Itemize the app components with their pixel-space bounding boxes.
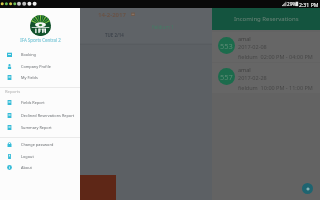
staticText: Logout bbox=[21, 154, 34, 159]
button[interactable]: Fields Report bbox=[0, 96, 80, 108]
staticText: Booking bbox=[21, 52, 36, 57]
button[interactable]: Summary Report bbox=[0, 121, 80, 133]
button[interactable]: Company Profile bbox=[0, 60, 80, 72]
staticText: 2017-02-28 bbox=[238, 74, 267, 81]
staticText: 29% bbox=[287, 1, 297, 7]
staticText: 557 bbox=[220, 72, 233, 82]
staticText: About bbox=[21, 165, 32, 170]
staticText: IFA Sports Central 2 bbox=[20, 37, 61, 43]
staticText: amal bbox=[238, 66, 251, 73]
staticText: 2017-02-08 bbox=[238, 43, 267, 50]
staticText: Declined Reservations Report bbox=[21, 113, 75, 118]
staticText: amal bbox=[238, 35, 251, 42]
button[interactable]: My Fields bbox=[0, 71, 80, 83]
staticText: 2:31 PM bbox=[299, 1, 319, 8]
staticText: Reports bbox=[5, 89, 21, 95]
button[interactable]: Logout bbox=[0, 150, 80, 162]
staticText: Company Profile bbox=[21, 64, 51, 69]
staticText: Summary Report bbox=[21, 125, 52, 130]
button[interactable]: Declined Reservations Report bbox=[0, 109, 80, 121]
staticText: My Fields bbox=[21, 75, 38, 80]
staticText: 14-2-2017 bbox=[98, 11, 126, 19]
button[interactable]: Booking bbox=[0, 48, 80, 60]
button[interactable]: 553 bbox=[212, 32, 320, 62]
staticText: TUE 2/14 bbox=[105, 32, 124, 38]
button[interactable]: About bbox=[0, 161, 80, 173]
button[interactable]: Change password bbox=[0, 138, 80, 150]
staticText: Incoming Reservations bbox=[234, 15, 299, 23]
button[interactable]: Add reservation bbox=[302, 183, 313, 194]
staticText: fieldium 1 bbox=[152, 24, 174, 30]
staticText: Fields Report bbox=[21, 100, 45, 105]
staticText: 553 bbox=[220, 41, 233, 51]
staticText: Change password bbox=[21, 142, 54, 147]
staticText: fieldum 02:00 PM - 04:00 PM bbox=[238, 53, 313, 60]
button[interactable]: 557 bbox=[212, 63, 320, 93]
staticText: fieldum 10:00 PM - 11:00 PM bbox=[238, 84, 313, 91]
